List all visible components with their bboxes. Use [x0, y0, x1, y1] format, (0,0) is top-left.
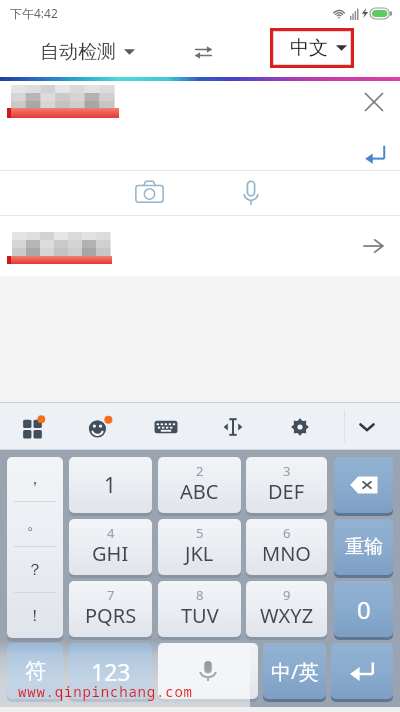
button[interactable]: ！ [7, 593, 63, 638]
button[interactable]: Camera [107, 171, 191, 215]
staticText: 9 [283, 586, 291, 604]
staticText: ？ [27, 560, 43, 580]
button[interactable]: Voice input [158, 643, 258, 700]
staticText: 8 [196, 586, 204, 604]
button[interactable]: Cursor [199, 403, 266, 450]
staticText: MNO [262, 540, 311, 567]
button[interactable]: 符 [7, 643, 63, 700]
staticText: WXYZ [260, 602, 314, 629]
button[interactable]: Enter [358, 137, 392, 171]
staticText: 7 [107, 586, 115, 604]
button[interactable]: 3 [246, 457, 327, 514]
staticText: 自动检测 [40, 40, 116, 64]
other: Go [358, 231, 388, 261]
button[interactable]: ？ [7, 547, 63, 592]
button[interactable]: 中/英 [263, 643, 326, 700]
staticText: 。 [27, 514, 43, 534]
button[interactable]: 0 [334, 581, 393, 638]
staticText: TUV [181, 602, 219, 629]
staticText: 123 [91, 656, 131, 687]
staticText: DEF [268, 478, 305, 505]
button[interactable]: Backspace [334, 457, 393, 514]
staticText: 中/英 [271, 658, 319, 685]
button[interactable]: 中文 [270, 28, 354, 68]
staticText: PQRS [85, 602, 137, 629]
button[interactable]: Go [0, 216, 400, 276]
button[interactable]: 123 [69, 643, 152, 700]
staticText: 3 [283, 462, 291, 480]
button[interactable]: Emoji [66, 403, 132, 450]
staticText: ！ [27, 606, 43, 626]
button[interactable]: Apps [0, 403, 66, 450]
staticText: 1 [104, 471, 117, 500]
staticText: www.qinpinchang.com [18, 682, 193, 701]
staticText: GHI [92, 540, 129, 567]
staticText: 符 [25, 658, 46, 684]
button[interactable]: 重输 [334, 519, 393, 576]
staticText: JKL [185, 540, 214, 567]
button[interactable]: ， [7, 457, 63, 501]
button[interactable]: 6 [246, 519, 327, 576]
staticText: 0 [357, 593, 371, 626]
button[interactable]: 7 [69, 581, 152, 638]
staticText: ABC [180, 478, 219, 505]
button[interactable]: Microphone [209, 171, 293, 215]
button[interactable]: Clear [357, 85, 391, 119]
staticText: 中文 [290, 36, 328, 60]
button[interactable]: 2 [158, 457, 241, 514]
staticText: ， [27, 469, 43, 489]
button[interactable]: 1 [69, 457, 152, 514]
button[interactable]: 9 [246, 581, 327, 638]
button[interactable]: Keyboard [132, 403, 199, 450]
button[interactable]: Swap languages [188, 37, 218, 67]
staticText: 6 [283, 524, 291, 542]
button[interactable]: Enter [331, 643, 393, 700]
button[interactable]: 8 [158, 581, 241, 638]
button[interactable]: Settings [266, 403, 333, 450]
button[interactable]: 自动检测 [40, 40, 127, 64]
button[interactable]: 4 [69, 519, 152, 576]
staticText: 4 [107, 524, 115, 542]
button[interactable]: 。 [7, 502, 63, 546]
staticText: 2 [196, 462, 204, 480]
staticText: 下午4:42 [10, 5, 58, 21]
staticText: 重输 [345, 535, 383, 559]
staticText: 5 [196, 524, 204, 542]
button[interactable]: 5 [158, 519, 241, 576]
button[interactable]: Hide keyboard [333, 403, 400, 450]
